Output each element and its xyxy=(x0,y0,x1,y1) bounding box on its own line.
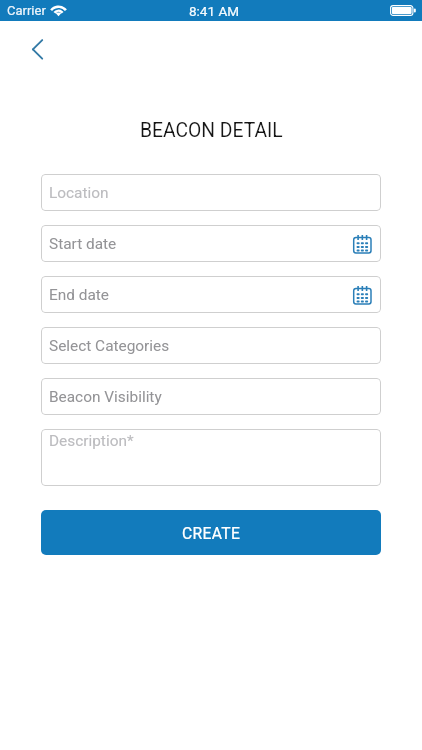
staticText: Start date xyxy=(49,235,117,253)
staticText: Location xyxy=(49,184,109,202)
button[interactable]: Location xyxy=(41,174,381,211)
staticText: Select Categories xyxy=(49,337,170,355)
staticText: End date xyxy=(49,286,109,304)
button[interactable]: Beacon Visibility xyxy=(41,378,381,415)
staticText: Description* xyxy=(49,432,134,450)
staticText: CREATE xyxy=(182,524,241,542)
button[interactable]: Pick date xyxy=(352,234,371,253)
button[interactable]: Select Categories xyxy=(41,327,381,364)
staticText: 8:41 AM xyxy=(189,3,239,19)
button[interactable]: End date xyxy=(41,276,381,313)
button[interactable]: Back xyxy=(12,30,52,70)
button[interactable]: Start date xyxy=(41,225,381,262)
staticText: Beacon Visibility xyxy=(49,388,162,406)
staticText: BEACON DETAIL xyxy=(140,119,283,142)
button[interactable]: Description* xyxy=(41,429,381,486)
button[interactable]: Pick date xyxy=(352,285,371,304)
button[interactable]: CREATE xyxy=(41,510,381,555)
staticText: Carrier xyxy=(7,3,46,18)
